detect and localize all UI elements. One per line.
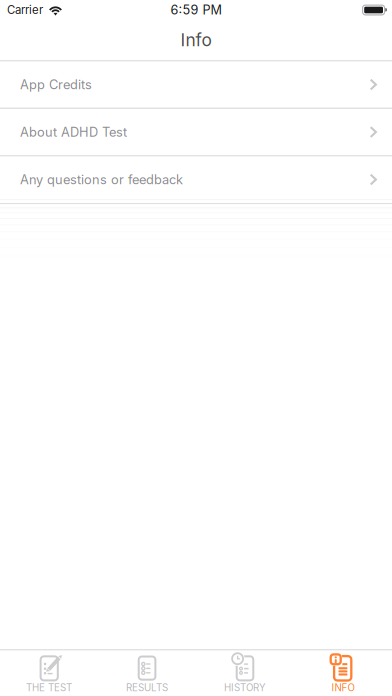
button[interactable]: Any questions or feedback (0, 157, 392, 204)
button[interactable]: THE TEST (0, 650, 98, 696)
staticText: About ADHD Test (20, 124, 127, 140)
staticText: THE TEST (26, 682, 72, 694)
button[interactable]: RESULTS (98, 650, 196, 696)
button[interactable]: INFO (294, 650, 392, 696)
staticText: HISTORY (224, 682, 266, 694)
staticText: Info (180, 29, 211, 50)
staticText: INFO (331, 682, 354, 694)
staticText: App Credits (20, 77, 92, 92)
staticText: Any questions or feedback (20, 172, 183, 187)
button[interactable]: About ADHD Test (0, 109, 392, 157)
button[interactable]: HISTORY (196, 650, 294, 696)
staticText: RESULTS (126, 682, 168, 694)
button[interactable]: App Credits (0, 62, 392, 109)
staticText: Carrier (7, 3, 43, 17)
staticText: 6:59 PM (170, 2, 221, 18)
